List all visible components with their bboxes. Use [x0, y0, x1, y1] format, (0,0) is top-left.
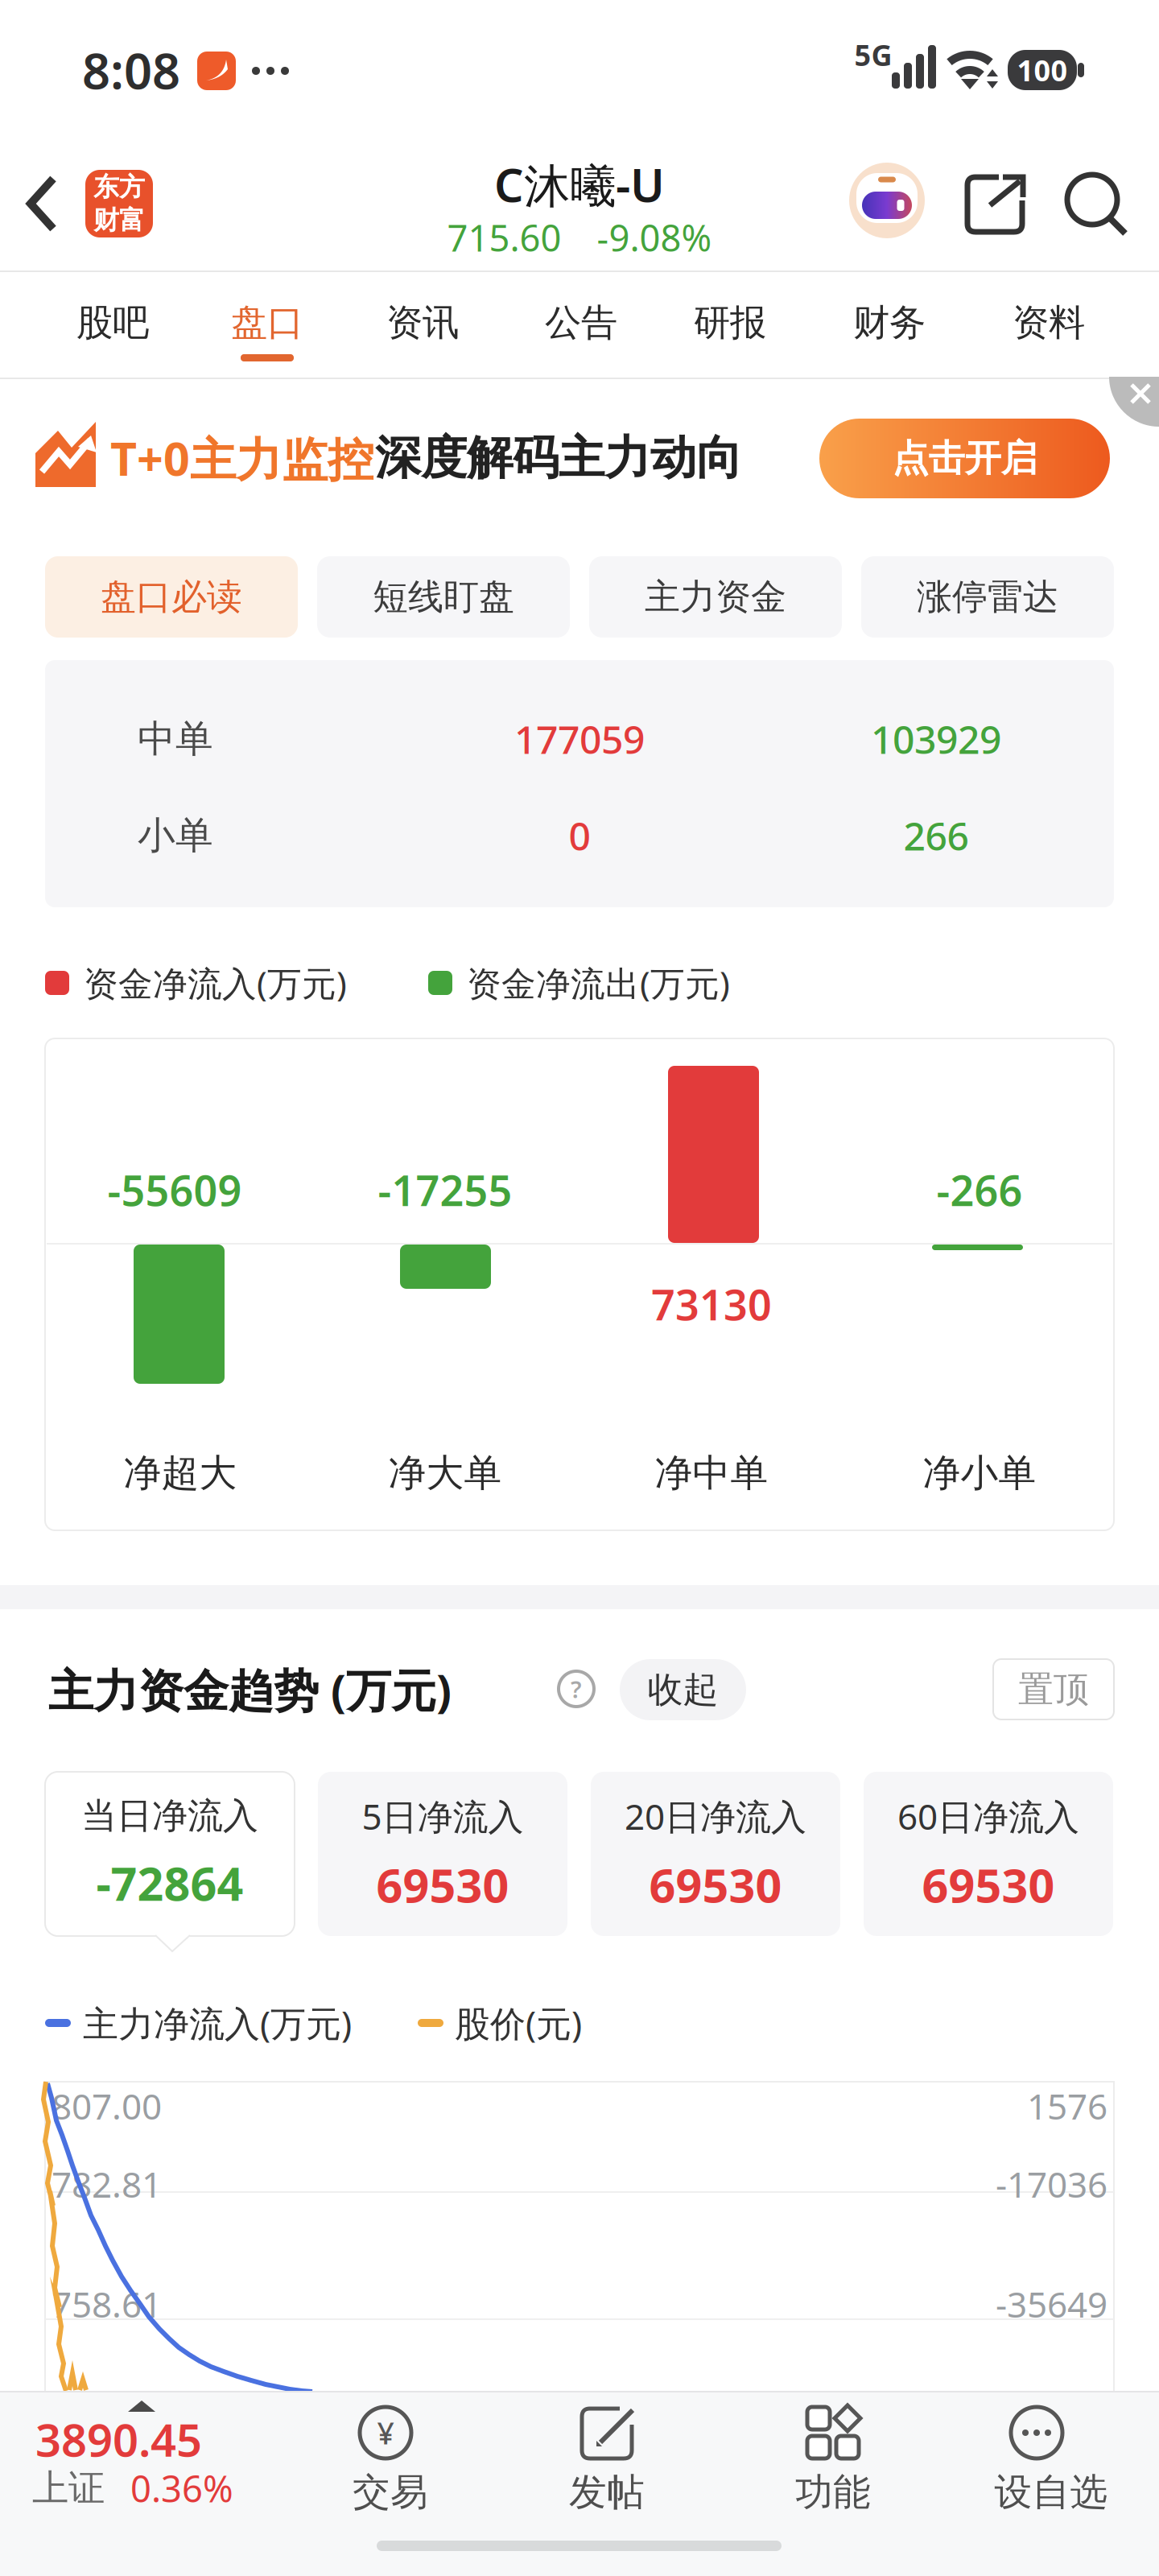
staticText: 收起: [648, 1668, 718, 1711]
staticText: 715.60: [447, 213, 561, 262]
staticText: 1576: [1027, 2082, 1107, 2129]
button[interactable]: 5日净流入: [318, 1772, 567, 1936]
button[interactable]: 盘口: [199, 275, 336, 371]
staticText: -72864: [96, 1852, 243, 1914]
staticText: 财务: [853, 300, 926, 345]
staticText: 中单: [138, 716, 213, 762]
button[interactable]: 置顶: [993, 1659, 1114, 1719]
button[interactable]: ¥: [305, 2395, 466, 2548]
button[interactable]: 研报: [662, 275, 798, 371]
button[interactable]: Back: [16, 165, 97, 246]
staticText: 资讯: [386, 300, 459, 345]
button[interactable]: 说明: [555, 1668, 597, 1710]
staticText: 股吧: [76, 300, 149, 345]
button[interactable]: 资料: [980, 275, 1117, 371]
staticText: C沐曦-U: [494, 154, 665, 215]
staticText: 小单: [138, 812, 213, 859]
button[interactable]: 20日净流入: [591, 1772, 840, 1936]
staticText: 交易: [353, 2469, 428, 2515]
button[interactable]: 60日净流入: [864, 1772, 1113, 1936]
staticText: ¥: [377, 2413, 394, 2453]
button[interactable]: 设自选: [956, 2395, 1117, 2548]
staticText: 公告: [545, 300, 617, 345]
staticText: 100: [1017, 51, 1068, 89]
button[interactable]: 发帖: [527, 2395, 688, 2548]
staticText: 盘口: [231, 300, 303, 345]
staticText: 资金净流出(万元): [467, 960, 730, 1006]
staticText: 净超大: [124, 1450, 237, 1496]
staticText: 净中单: [655, 1450, 768, 1496]
staticText: 20日净流入: [625, 1792, 806, 1840]
staticText: 短线盯盘: [373, 575, 514, 619]
staticText: 股价(元): [455, 1999, 582, 2046]
staticText: 主力资金: [645, 575, 786, 619]
staticText: T+0主力监控: [110, 427, 373, 489]
staticText: 5G: [854, 36, 892, 74]
staticText: -17255: [378, 1162, 512, 1218]
staticText: 上证: [32, 2466, 105, 2511]
staticText: ?: [571, 1673, 582, 1705]
staticText: 758.61: [52, 2280, 162, 2327]
staticText: 807.00: [52, 2082, 162, 2129]
staticText: 东方: [93, 171, 145, 203]
staticText: -266: [936, 1162, 1023, 1218]
button[interactable]: 智能助手: [849, 163, 925, 238]
staticText: 0: [569, 810, 590, 861]
staticText: 69530: [376, 1854, 509, 1915]
staticText: 功能: [795, 2469, 871, 2515]
staticText: 研报: [694, 300, 766, 345]
staticText: 0.36%: [130, 2464, 233, 2512]
button[interactable]: Search: [1054, 161, 1135, 242]
staticText: 资料: [1013, 300, 1085, 345]
staticText: 主力净流入(万元): [83, 1999, 352, 2046]
button[interactable]: 3890.45: [0, 2395, 290, 2548]
button[interactable]: 主力资金: [589, 556, 842, 638]
staticText: -17036: [996, 2160, 1107, 2207]
staticText: 177059: [514, 713, 645, 765]
staticText: 782.81: [52, 2160, 162, 2207]
staticText: 发帖: [569, 2469, 645, 2515]
staticText: 深度解码主力动向: [375, 430, 742, 486]
button[interactable]: 短线盯盘: [317, 556, 570, 638]
staticText: -35649: [996, 2280, 1107, 2327]
staticText: 财富: [93, 204, 145, 236]
staticText: 设自选: [994, 2469, 1108, 2515]
staticText: 涨停雷达: [917, 575, 1058, 619]
staticText: 点击开启: [892, 436, 1037, 481]
staticText: 净小单: [923, 1450, 1036, 1496]
staticText: 3890.45: [35, 2409, 202, 2469]
staticText: 盘口必读: [101, 575, 242, 619]
staticText: 103929: [871, 713, 1001, 765]
staticText: 当日净流入: [81, 1794, 258, 1838]
button[interactable]: 东方财富: [85, 170, 153, 237]
staticText: 60日净流入: [897, 1792, 1079, 1840]
button[interactable]: 当日净流入: [45, 1772, 295, 1936]
button[interactable]: 资讯: [354, 275, 491, 371]
staticText: 净大单: [388, 1450, 502, 1496]
staticText: -55609: [107, 1162, 242, 1218]
button[interactable]: T+0主力监控: [0, 378, 1159, 531]
button[interactable]: 收起: [620, 1659, 746, 1720]
staticText: 69530: [922, 1854, 1055, 1915]
staticText: 266: [903, 810, 969, 861]
button[interactable]: 盘口必读: [45, 556, 298, 638]
staticText: 69530: [649, 1854, 782, 1915]
staticText: -9.08%: [597, 213, 712, 262]
staticText: 资金净流入(万元): [84, 960, 347, 1006]
button[interactable]: 公告: [513, 275, 650, 371]
button[interactable]: 股吧: [44, 275, 181, 371]
button[interactable]: 涨停雷达: [861, 556, 1114, 638]
staticText: 主力资金趋势 (万元): [48, 1660, 452, 1720]
staticText: 8:08: [82, 37, 180, 103]
staticText: 5日净流入: [362, 1792, 524, 1840]
button[interactable]: Share: [963, 171, 1028, 236]
staticText: 73130: [651, 1276, 772, 1332]
staticText: 置顶: [1018, 1668, 1089, 1711]
button[interactable]: 功能: [751, 2395, 912, 2548]
button[interactable]: Close: [1109, 377, 1159, 427]
button[interactable]: 财务: [821, 275, 958, 371]
